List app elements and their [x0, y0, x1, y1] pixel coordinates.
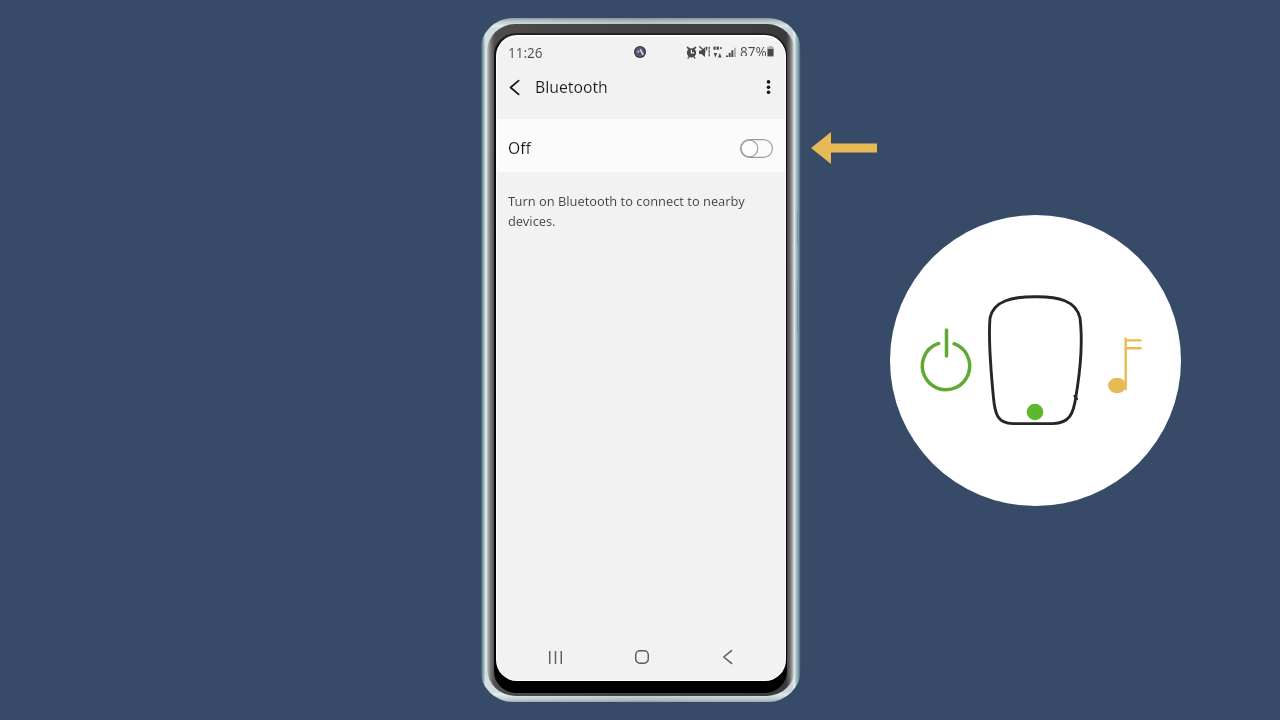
- button[interactable]: Home: [620, 639, 664, 675]
- staticText: Off: [508, 137, 531, 158]
- button[interactable]: Off: [497, 119, 785, 172]
- button[interactable]: Back: [705, 639, 749, 675]
- button[interactable]: Back: [499, 79, 527, 107]
- button[interactable]: Recent apps: [533, 639, 577, 675]
- staticText: Bluetooth: [535, 76, 608, 97]
- staticText: 87%: [740, 43, 767, 56]
- staticText: Turn on Bluetooth to connect to nearby d…: [508, 192, 753, 229]
- button[interactable]: More options: [754, 79, 782, 107]
- staticText: 11:26: [508, 44, 543, 62]
